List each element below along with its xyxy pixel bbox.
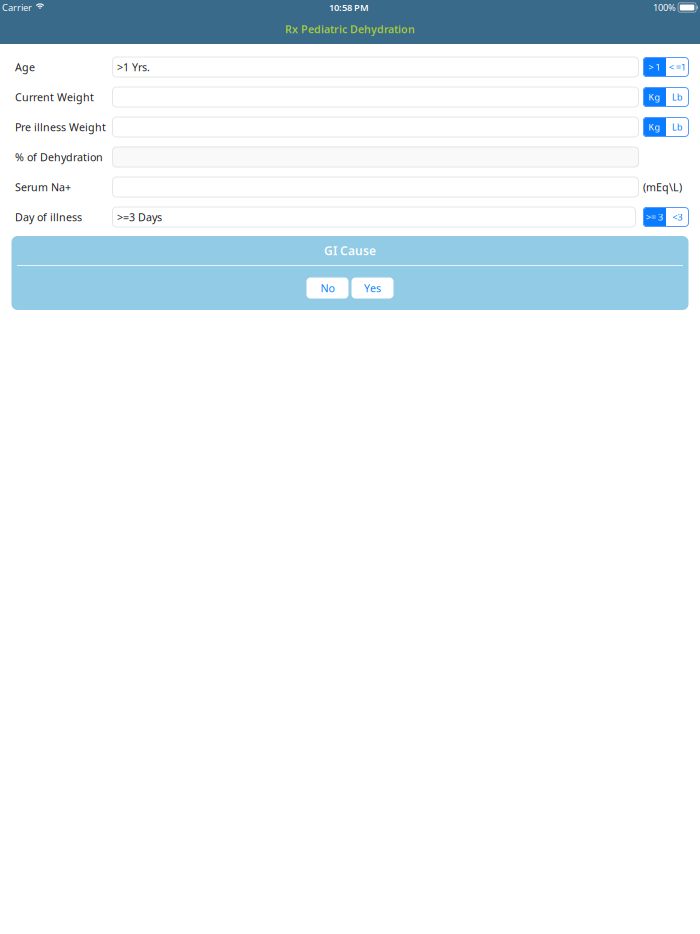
staticText: (mEq\L) bbox=[643, 180, 682, 194]
staticText: Yes bbox=[364, 281, 381, 295]
staticText: Kg bbox=[648, 91, 660, 103]
button[interactable]: No bbox=[306, 277, 348, 298]
button[interactable]: Age bbox=[112, 56, 639, 77]
staticText: No bbox=[320, 281, 334, 295]
staticText: Day of illness bbox=[15, 210, 82, 224]
button[interactable]: Kg bbox=[643, 117, 666, 137]
button[interactable]: Lb bbox=[666, 87, 689, 107]
button[interactable]: > 1 bbox=[643, 57, 666, 77]
staticText: % of Dehydration bbox=[15, 150, 103, 164]
staticText: > 1 bbox=[648, 61, 660, 73]
staticText: Carrier bbox=[2, 1, 32, 14]
button[interactable]: Serum Na+ bbox=[112, 176, 639, 197]
staticText: Lb bbox=[672, 121, 683, 133]
staticText: Lb bbox=[672, 91, 683, 103]
staticText: >=3 Days bbox=[117, 210, 162, 224]
staticText: 10:58 PM bbox=[329, 1, 369, 14]
staticText: Current Weight bbox=[15, 90, 94, 104]
button[interactable]: <3 bbox=[666, 207, 689, 227]
staticText: 100% bbox=[653, 1, 676, 14]
staticText: Serum Na+ bbox=[15, 180, 71, 194]
button[interactable]: Kg bbox=[643, 87, 666, 107]
button[interactable]: Current Weight bbox=[112, 86, 639, 107]
staticText: >= 3 bbox=[646, 211, 663, 223]
staticText: >1 Yrs. bbox=[117, 60, 150, 74]
staticText: Age bbox=[15, 60, 35, 74]
staticText: <3 bbox=[672, 211, 682, 223]
staticText: Rx Pediatric Dehydration bbox=[285, 22, 415, 36]
button[interactable]: >= 3 bbox=[643, 207, 666, 227]
staticText: GI Cause bbox=[324, 242, 376, 258]
button[interactable]: Lb bbox=[666, 117, 689, 137]
staticText: Pre illness Weight bbox=[15, 120, 106, 134]
button[interactable]: Day of illness bbox=[112, 206, 636, 227]
button[interactable]: % of Dehydration bbox=[112, 146, 639, 167]
button[interactable]: < =1 bbox=[666, 57, 689, 77]
button[interactable]: Pre illness Weight bbox=[112, 116, 639, 137]
button[interactable]: Yes bbox=[351, 277, 393, 298]
staticText: < =1 bbox=[669, 61, 686, 73]
staticText: Kg bbox=[648, 121, 660, 133]
